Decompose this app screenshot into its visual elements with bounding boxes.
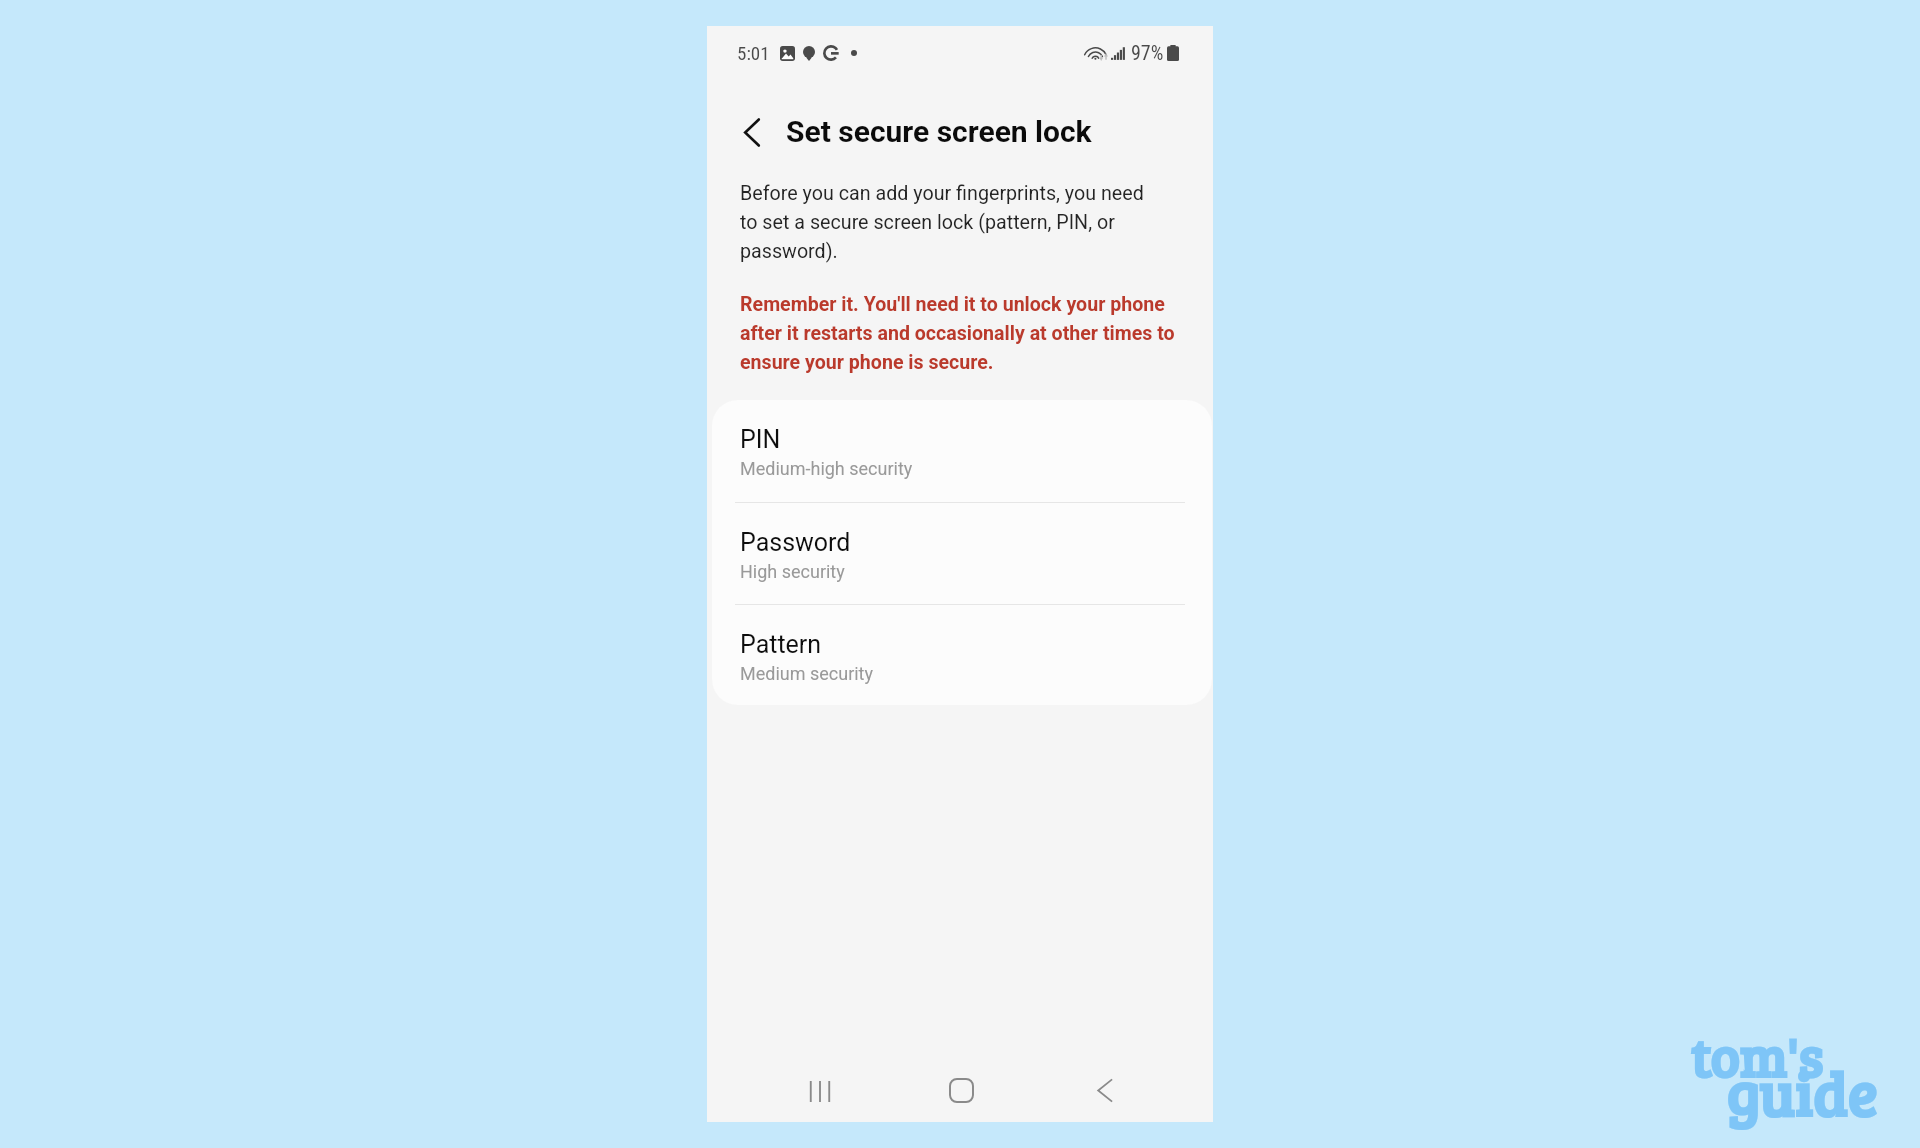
staticText: Set secure screen lock (786, 114, 1092, 149)
staticText: Medium security (740, 663, 874, 684)
button[interactable]: Recent apps (799, 1070, 841, 1112)
button[interactable]: PIN (712, 400, 1212, 502)
staticText: High security (740, 561, 845, 582)
button[interactable]: Home (940, 1069, 982, 1111)
staticText: Pattern (740, 630, 822, 659)
button[interactable]: Pattern (712, 605, 1212, 705)
staticText: Password (740, 528, 851, 557)
staticText: tom's (1690, 1019, 1823, 1094)
staticText: guide (1726, 1051, 1877, 1134)
staticText: Before you can add your fingerprints, yo… (740, 182, 1158, 263)
staticText: 5:01 (737, 42, 770, 64)
button[interactable]: Back (1083, 1069, 1125, 1111)
staticText: Medium-high security (740, 458, 913, 479)
button[interactable]: Back (730, 110, 774, 154)
staticText: Remember it. You'll need it to unlock yo… (740, 293, 1185, 374)
button[interactable]: Password (712, 503, 1212, 604)
staticText: PIN (740, 425, 781, 454)
staticText: 97% (1131, 41, 1164, 64)
